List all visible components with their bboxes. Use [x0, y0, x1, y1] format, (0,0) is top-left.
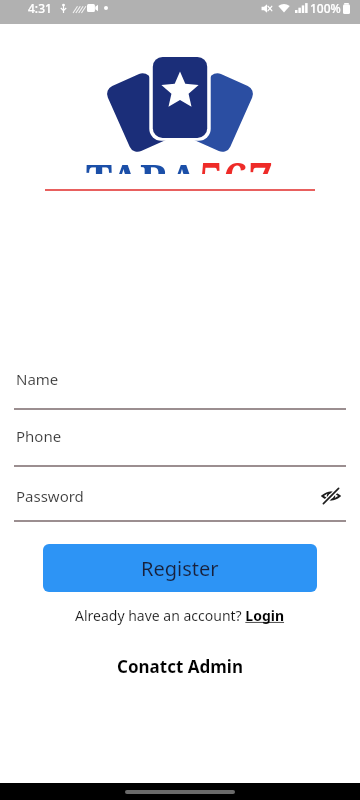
staticText: Already have an account? Login: [75, 606, 285, 625]
button[interactable]: Name: [0, 369, 360, 389]
staticText: Name: [16, 369, 59, 389]
button[interactable]: Already have an account? Login: [75, 606, 285, 625]
staticText: 4:31: [28, 0, 52, 16]
staticText: Phone: [16, 426, 62, 446]
button[interactable]: Conatct Admin: [117, 655, 243, 678]
staticText: TARA567: [86, 147, 274, 174]
staticText: Register: [141, 555, 219, 582]
staticText: 100%: [310, 0, 341, 16]
staticText: Password: [16, 486, 84, 506]
staticText: Conatct Admin: [117, 655, 243, 678]
button[interactable]: Password: [0, 483, 360, 509]
button[interactable]: Register: [43, 544, 317, 592]
button[interactable]: Phone: [0, 426, 360, 446]
button[interactable]: Toggle password visibility: [318, 483, 344, 509]
